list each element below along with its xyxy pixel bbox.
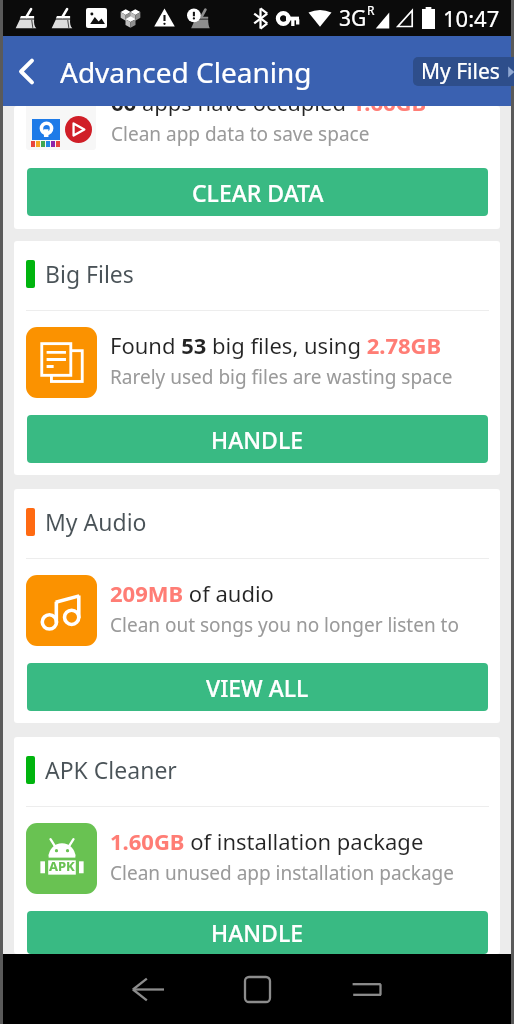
staticText: Clean app data to save space	[111, 121, 370, 147]
staticText: Rarely used big files are wasting space	[110, 364, 453, 390]
staticText: Found 53 big files, using 2.78GB	[110, 330, 442, 360]
button[interactable]: Recent apps	[336, 958, 398, 1020]
button[interactable]: Home	[226, 958, 288, 1020]
staticText: 3G	[339, 4, 367, 33]
staticText: Clean out songs you no longer listen to	[110, 612, 459, 638]
staticText: APK	[49, 857, 75, 875]
staticText: My Files	[421, 57, 500, 86]
button[interactable]: My Files	[413, 57, 514, 86]
staticText: Clean unused app installation package	[110, 860, 454, 886]
staticText: My Audio	[45, 506, 147, 537]
staticText: Advanced Cleaning	[60, 53, 312, 91]
button[interactable]: 66 apps have occupied 1.66GB	[14, 106, 500, 229]
staticText: R	[367, 2, 375, 18]
staticText: 1.60GB of installation package	[110, 826, 424, 856]
button[interactable]: VIEW ALL	[27, 663, 488, 711]
button[interactable]: CLEAR DATA	[27, 168, 488, 216]
button[interactable]: HANDLE	[27, 415, 488, 463]
staticText: 209MB of audio	[110, 578, 274, 608]
staticText: 66 apps have occupied 1.66GB	[111, 106, 427, 117]
button[interactable]: Back	[116, 958, 178, 1020]
staticText: HANDLE	[211, 917, 304, 948]
staticText: Big Files	[45, 258, 134, 289]
staticText: HANDLE	[211, 424, 304, 455]
staticText: APK Cleaner	[45, 754, 177, 785]
staticText: 10:47	[443, 3, 500, 33]
staticText: CLEAR DATA	[192, 177, 324, 208]
staticText: VIEW ALL	[206, 672, 309, 703]
button[interactable]: Back	[3, 48, 49, 94]
button[interactable]: HANDLE	[27, 911, 488, 954]
